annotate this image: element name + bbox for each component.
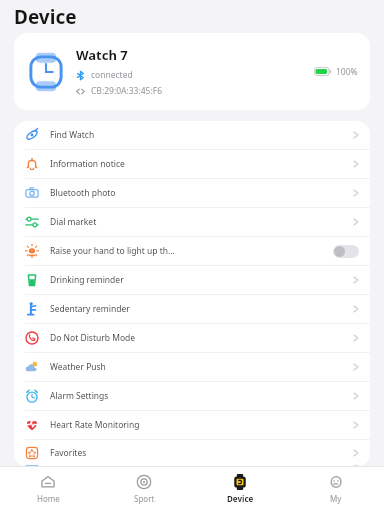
button[interactable]: Watch 7 [14, 33, 370, 110]
staticText: My [330, 493, 342, 504]
button[interactable]: Home [0, 466, 96, 512]
staticText: Bluetooth photo [50, 187, 353, 199]
staticText: Home [37, 493, 60, 504]
staticText: Device [227, 493, 254, 504]
staticText: Drinking reminder [50, 274, 353, 286]
staticText: Do Not Disturb Mode [50, 332, 353, 344]
button[interactable]: Do Not Disturb Mode [14, 324, 370, 352]
staticText: Sport [134, 493, 155, 504]
button[interactable]: Heart Rate Monitoring [14, 411, 370, 439]
button[interactable]: Sedentary reminder [14, 295, 370, 323]
button[interactable]: Device [192, 466, 288, 512]
button[interactable]: Dial market [14, 208, 370, 236]
staticText: Heart Rate Monitoring [50, 419, 353, 431]
staticText: Favorites [50, 447, 353, 459]
button[interactable]: Information notice [14, 150, 370, 178]
staticText: Weather Push [50, 361, 353, 373]
button[interactable]: My [288, 466, 384, 512]
staticText: Find Watch [50, 129, 353, 141]
staticText: Alarm Settings [50, 390, 353, 402]
staticText: connected [91, 69, 133, 81]
staticText: Watch 7 [76, 46, 128, 64]
button[interactable]: Favorites [14, 440, 370, 466]
staticText: 100% [336, 66, 358, 78]
staticText: Information notice [50, 158, 353, 170]
button[interactable]: Bluetooth photo [14, 179, 370, 207]
button[interactable]: Raise your hand to light up th... [14, 237, 370, 265]
staticText: Raise your hand to light up th... [50, 245, 333, 257]
button[interactable]: Toggle raise to wake [333, 245, 359, 258]
staticText: CB:29:0A:33:45:F6 [91, 85, 163, 97]
staticText: Device [14, 4, 77, 30]
staticText: Dial market [50, 216, 353, 228]
button[interactable]: Find Watch [14, 121, 370, 149]
button[interactable]: Drinking reminder [14, 266, 370, 294]
button[interactable]: Sport [96, 466, 192, 512]
button[interactable]: Weather Push [14, 353, 370, 381]
button[interactable]: Alarm Settings [14, 382, 370, 410]
staticText: Sedentary reminder [50, 303, 353, 315]
